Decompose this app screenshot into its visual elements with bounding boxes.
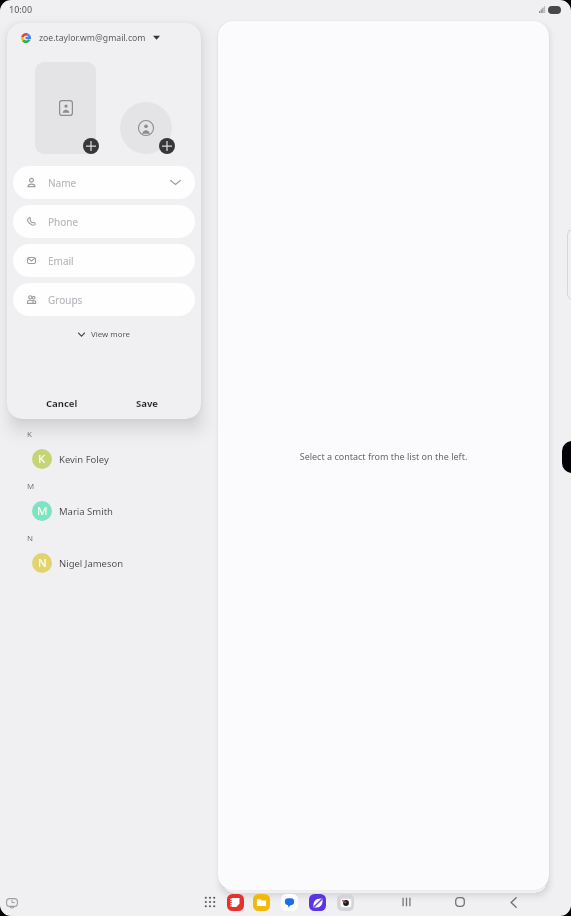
button[interactable]: View more [7, 323, 201, 345]
button[interactable]: Recents [395, 891, 417, 913]
button[interactable]: zoe.taylor.wm@gmail.com [7, 26, 201, 49]
button[interactable]: Add [83, 138, 99, 154]
button[interactable]: N [0, 546, 210, 580]
button[interactable]: Groups [13, 283, 195, 316]
staticText: Kevin Foley [59, 453, 109, 466]
button[interactable]: Edge panel [568, 230, 571, 299]
staticText: View more [91, 329, 131, 340]
staticText: Save [136, 397, 159, 410]
staticText: K [38, 451, 46, 467]
staticText: 10:00 [9, 3, 33, 15]
button[interactable]: K [0, 442, 210, 476]
button[interactable]: Add avatar [120, 102, 172, 154]
staticText: M [27, 481, 35, 492]
button[interactable]: Camera [337, 894, 354, 911]
button[interactable]: Internet [309, 894, 326, 911]
button[interactable]: Notes [227, 894, 244, 911]
button[interactable]: Cancel [36, 390, 88, 416]
staticText: Nigel Jameson [59, 557, 124, 570]
button[interactable]: Phone [13, 205, 195, 238]
staticText: K [27, 429, 32, 440]
staticText: Cancel [46, 397, 78, 410]
staticText: Email [48, 254, 74, 268]
staticText: zoe.taylor.wm@gmail.com [39, 32, 146, 44]
button[interactable]: Email [13, 244, 195, 277]
staticText: Groups [48, 293, 83, 307]
staticText: Maria Smith [59, 505, 113, 518]
staticText: Name [48, 176, 77, 190]
staticText: Select a contact from the list on the le… [218, 450, 549, 462]
staticText: M [37, 503, 48, 519]
button[interactable]: Edge panel handle [562, 441, 571, 473]
button[interactable]: Name [13, 166, 195, 199]
button[interactable]: Add [159, 138, 175, 154]
button[interactable]: Add portrait photo [35, 62, 96, 154]
button[interactable]: Home [449, 891, 471, 913]
staticText: N [38, 555, 47, 571]
staticText: N [27, 533, 33, 544]
button[interactable]: Files [253, 894, 270, 911]
staticText: Phone [48, 215, 79, 229]
button[interactable]: Messages [281, 894, 298, 911]
button[interactable]: M [0, 494, 210, 528]
button[interactable]: Back [502, 891, 524, 913]
button[interactable]: Save [121, 390, 173, 416]
button[interactable]: Notification [4, 896, 20, 912]
button[interactable]: Apps [202, 894, 218, 910]
